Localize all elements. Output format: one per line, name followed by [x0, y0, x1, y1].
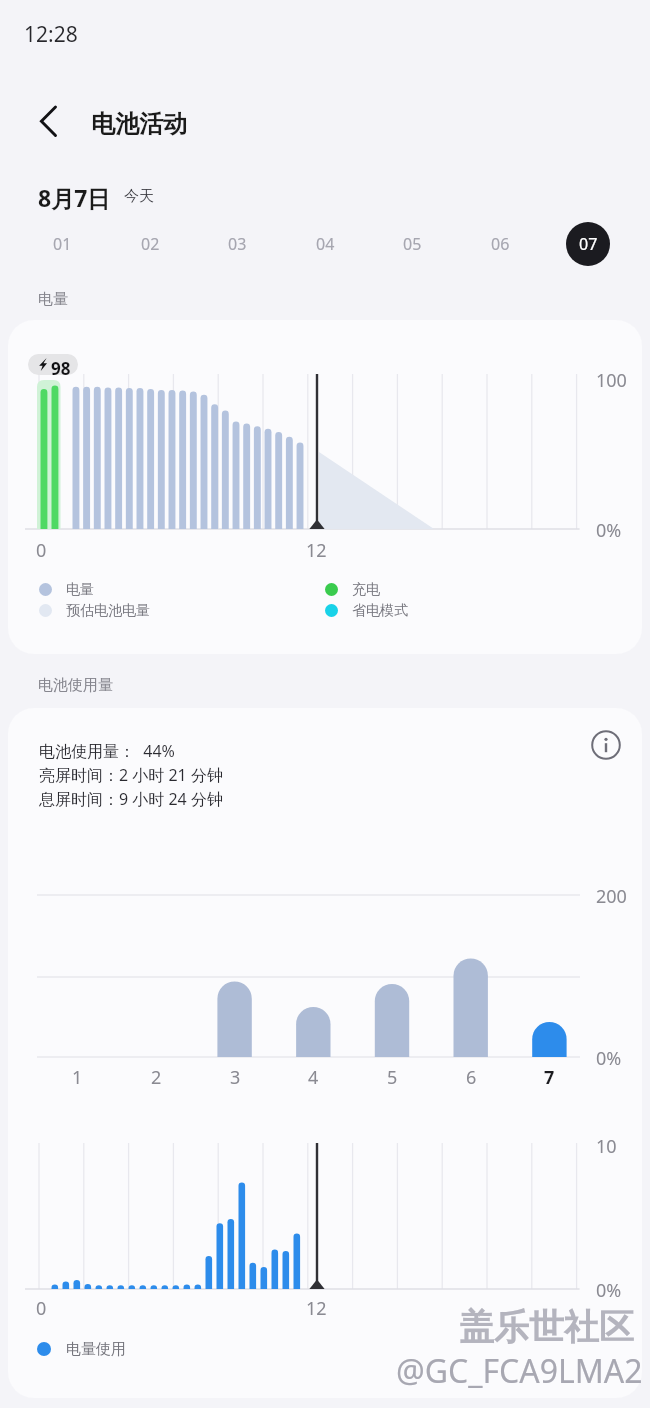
button[interactable]: 02 [128, 222, 172, 266]
staticText: 0% [596, 1046, 622, 1071]
staticText: 1 [72, 1065, 83, 1090]
staticText: 0% [596, 1278, 622, 1303]
staticText: 省电模式 [352, 602, 408, 620]
staticText: 电量 [66, 581, 94, 599]
staticText: 电池使用量： 44% [39, 740, 175, 762]
staticText: 07 [579, 233, 598, 255]
staticText: 4 [308, 1065, 319, 1090]
staticText: 12 [306, 538, 327, 563]
staticText: 0 [36, 538, 47, 563]
staticText: 12:28 [24, 20, 78, 49]
staticText: 亮屏时间：2 小时 21 分钟 [39, 764, 223, 786]
staticText: 03 [228, 233, 247, 255]
button[interactable]: 07 [566, 222, 610, 266]
staticText: 6 [466, 1065, 477, 1090]
button[interactable]: Back [26, 97, 72, 143]
staticText: 电池使用量 [38, 676, 113, 695]
staticText: 10 [596, 1134, 617, 1159]
staticText: 盖乐世社区 [459, 1305, 634, 1349]
staticText: 02 [141, 233, 160, 255]
staticText: 2 [151, 1065, 162, 1090]
staticText: 预估电池电量 [66, 602, 150, 620]
button[interactable]: 05 [390, 222, 434, 266]
staticText: 06 [491, 233, 510, 255]
staticText: 电量使用 [66, 1340, 126, 1359]
staticText: 5 [387, 1065, 398, 1090]
staticText: 7 [544, 1065, 555, 1090]
staticText: 0 [36, 1296, 47, 1321]
staticText: 息屏时间：9 小时 24 分钟 [39, 788, 223, 810]
staticText: 0% [596, 518, 622, 543]
staticText: 3 [230, 1065, 241, 1090]
staticText: 100 [596, 368, 627, 393]
staticText: 05 [403, 233, 422, 255]
button[interactable]: 06 [478, 222, 522, 266]
staticText: 98 [51, 357, 71, 380]
staticText: 04 [316, 233, 335, 255]
staticText: 充电 [352, 581, 380, 599]
staticText: 电池活动 [91, 109, 187, 139]
button[interactable]: 01 [40, 222, 84, 266]
staticText: 电量 [38, 290, 68, 309]
button[interactable]: Information [586, 725, 626, 765]
button[interactable]: 04 [303, 222, 347, 266]
staticText: 12 [306, 1296, 327, 1321]
button[interactable]: 03 [215, 222, 259, 266]
staticText: @GC_FCA9LMA2 [396, 1349, 643, 1393]
staticText: 今天 [124, 187, 154, 206]
staticText: 8月7日 [38, 182, 111, 213]
staticText: 01 [53, 233, 72, 255]
staticText: 200 [596, 884, 627, 909]
